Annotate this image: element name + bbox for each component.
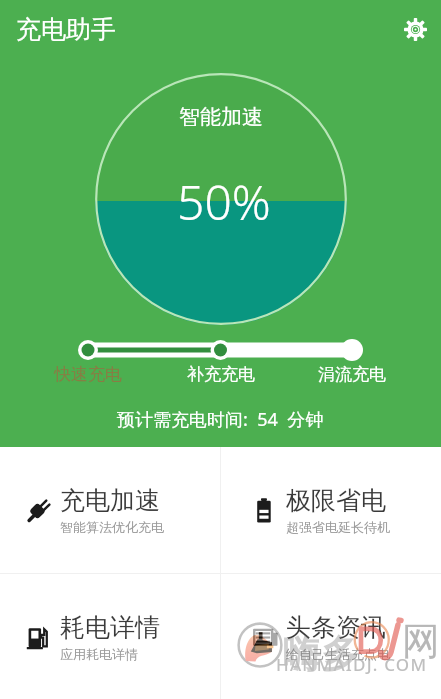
staticText: 超强省电延长待机 — [286, 519, 390, 535]
staticText: 预计需充电时间: 54 分钟 — [117, 407, 324, 432]
button[interactable]: 充电加速 — [0, 447, 220, 573]
staticText: 50% — [177, 169, 271, 234]
staticText: 补充充电 — [187, 364, 255, 385]
staticText: 充电助手 — [16, 14, 116, 45]
button[interactable]: Settings — [391, 5, 439, 53]
staticText: 应用耗电详情 — [60, 646, 138, 662]
staticText: 涓流充电 — [318, 364, 386, 385]
staticText: 充电加速 — [60, 485, 160, 516]
staticText: 智能算法优化充电 — [60, 519, 164, 535]
button[interactable]: 耗电详情 — [0, 574, 220, 699]
staticText: 耗电详情 — [60, 612, 160, 643]
staticText: 给自己生活充点电 — [286, 646, 390, 662]
staticText: 智能加速 — [179, 104, 263, 130]
staticText: 网 — [402, 617, 440, 665]
staticText: 头条资讯 — [286, 612, 386, 643]
button[interactable]: 极限省电 — [221, 447, 441, 573]
staticText: 极限省电 — [286, 485, 386, 516]
staticText: 快速充电 — [54, 364, 122, 385]
button[interactable]: 头条资讯 — [221, 574, 441, 699]
staticText: HANMAIDJ. COM — [276, 653, 428, 676]
staticText: 嗨多 — [283, 630, 359, 678]
